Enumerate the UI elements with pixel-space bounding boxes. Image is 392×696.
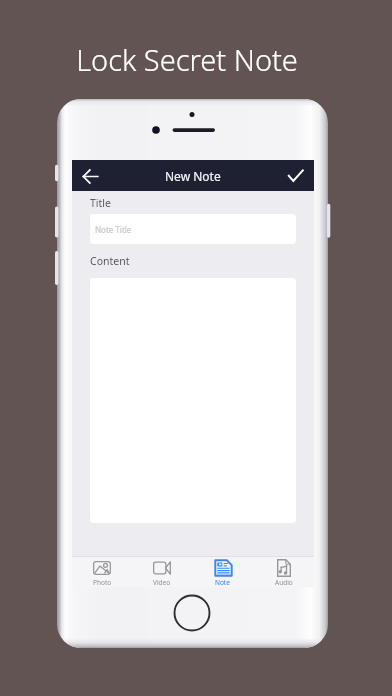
button[interactable]: Audio — [253, 557, 314, 587]
staticText: New Note — [165, 168, 221, 184]
button[interactable]: Note Title — [90, 214, 296, 244]
staticText: Note Title — [95, 224, 132, 235]
staticText: Lock Secret Note — [76, 40, 298, 79]
staticText: Note — [215, 578, 230, 587]
staticText: Title — [90, 196, 111, 210]
button[interactable]: Photo — [72, 557, 132, 587]
staticText: Audio — [275, 578, 293, 587]
button[interactable]: Save note — [283, 163, 307, 187]
staticText: Content — [90, 254, 130, 268]
button[interactable]: Back — [78, 164, 102, 188]
staticText: Photo — [93, 578, 112, 587]
button[interactable]: Note — [192, 557, 253, 587]
staticText: Video — [153, 578, 171, 587]
button[interactable]: Video — [132, 557, 192, 587]
